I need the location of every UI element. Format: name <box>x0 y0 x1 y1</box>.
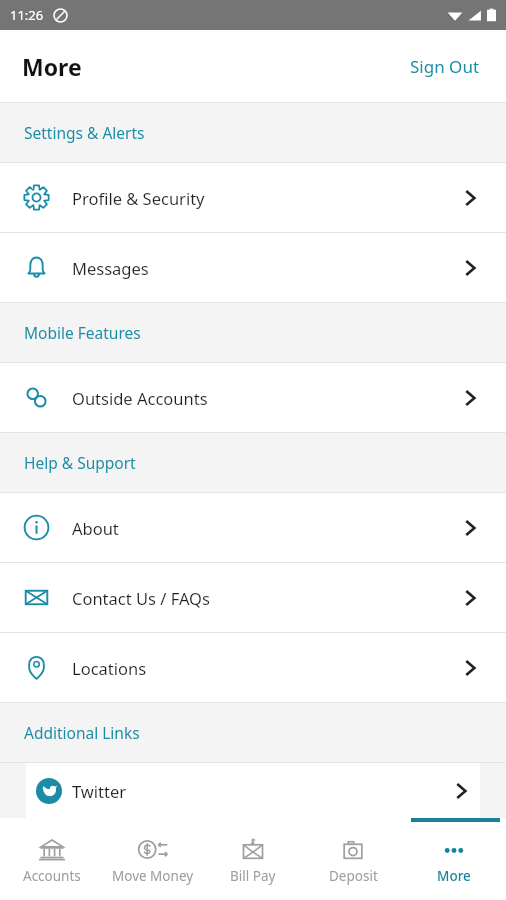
staticText: Mobile Features <box>24 322 141 343</box>
staticText: More <box>437 867 471 885</box>
button[interactable]: Twitter <box>26 763 480 818</box>
staticText: Sign Out <box>410 55 480 78</box>
button[interactable]: Bill Pay <box>205 833 301 889</box>
staticText: Additional Links <box>24 722 140 743</box>
button[interactable]: Outside Accounts <box>0 363 506 432</box>
staticText: Help & Support <box>24 452 136 473</box>
staticText: Locations <box>72 657 147 679</box>
button[interactable]: Profile & Security <box>0 163 506 232</box>
staticText: 11:26 <box>10 6 44 24</box>
staticText: About <box>72 517 119 539</box>
button[interactable]: Locations <box>0 633 506 702</box>
button[interactable]: More <box>406 833 502 889</box>
button[interactable]: Messages <box>0 233 506 302</box>
button[interactable]: About <box>0 493 506 562</box>
button[interactable]: Contact Us / FAQs <box>0 563 506 632</box>
button[interactable]: Move Money <box>105 833 201 889</box>
button[interactable]: Sign Out <box>406 51 484 82</box>
staticText: Messages <box>72 257 149 279</box>
staticText: Accounts <box>23 867 81 885</box>
button[interactable]: Deposit <box>305 833 401 889</box>
staticText: Move Money <box>112 867 194 885</box>
button[interactable]: Accounts <box>4 833 100 889</box>
staticText: Contact Us / FAQs <box>72 587 210 609</box>
staticText: Bill Pay <box>230 867 276 885</box>
staticText: More <box>22 51 82 82</box>
staticText: Settings & Alerts <box>24 122 145 143</box>
staticText: Outside Accounts <box>72 387 208 409</box>
staticText: Deposit <box>329 867 378 885</box>
staticText: Twitter <box>72 780 127 802</box>
staticText: Profile & Security <box>72 187 205 209</box>
